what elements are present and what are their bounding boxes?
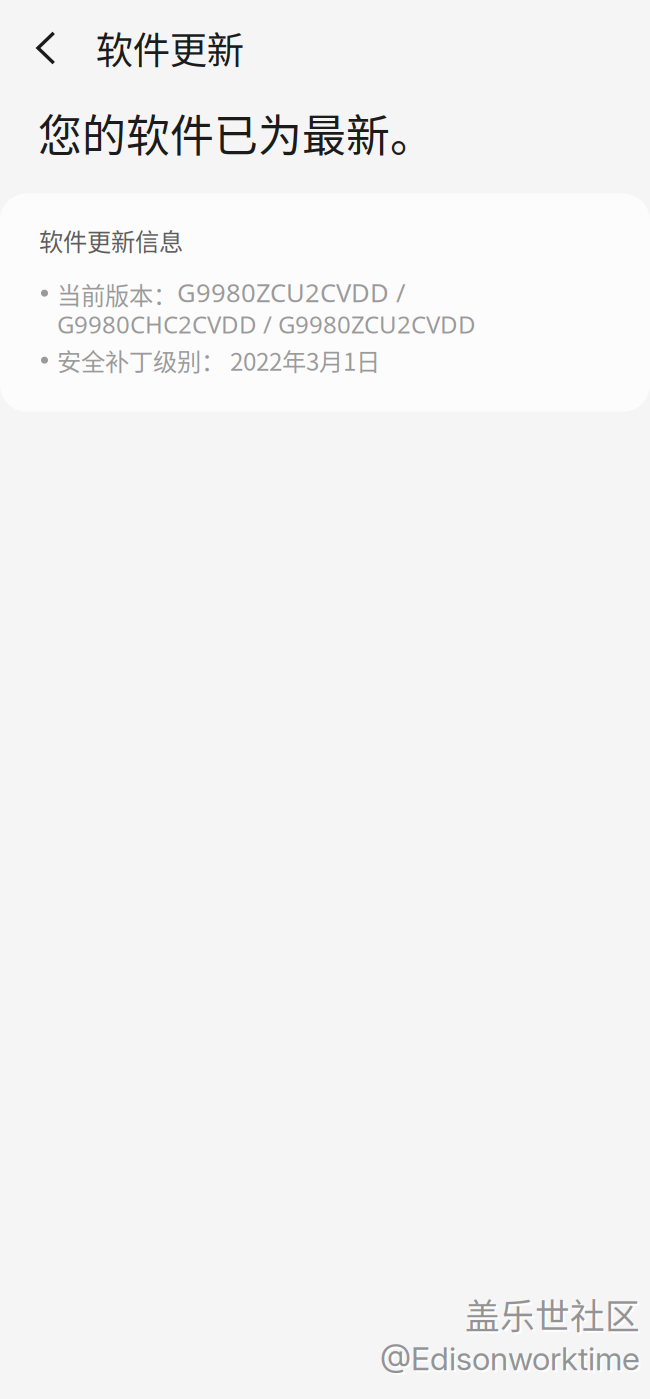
staticText: 软件更新信息 [39, 222, 183, 258]
staticText: 当前版本：G9980ZCU2CVDD / [57, 275, 406, 311]
staticText: 盖乐世社区 [465, 1289, 640, 1339]
staticText: G9980CHC2CVDD / G9980ZCU2CVDD [57, 308, 476, 340]
staticText: 软件更新 [96, 21, 244, 75]
staticText: @Edisonworktime [382, 1341, 642, 1380]
staticText: 安全补丁级别： 2022年3月1日 [57, 343, 380, 377]
staticText: @Edisonworktime [380, 1339, 640, 1378]
button[interactable]: Back [0, 0, 96, 96]
staticText: 盖乐世社区 [467, 1291, 642, 1341]
staticText: 您的软件已为最新。 [38, 101, 434, 164]
